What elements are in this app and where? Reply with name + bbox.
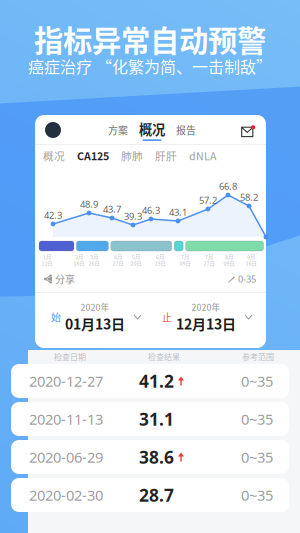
staticText: 48.9 xyxy=(80,198,98,210)
staticText: 检查日期 xyxy=(54,351,86,362)
staticText: 39.3 xyxy=(124,210,142,222)
staticText: 2020-02-30 xyxy=(29,485,103,505)
staticText: 46.3 xyxy=(142,204,160,216)
staticText: 58.2 xyxy=(240,191,258,203)
staticText: 止 xyxy=(162,310,172,324)
staticText: 5月 xyxy=(132,253,140,261)
staticText: 01月13日 xyxy=(65,313,125,333)
staticText: 分享 xyxy=(55,272,75,286)
button[interactable]: 概况 xyxy=(37,146,71,165)
staticText: 2020年 xyxy=(80,301,109,313)
button[interactable]: 2020-06-29 xyxy=(11,440,289,474)
staticText: 27日 xyxy=(203,259,214,267)
staticText: 8月 xyxy=(225,253,233,261)
button[interactable]: CA125 xyxy=(71,146,115,165)
staticText: 09日 xyxy=(179,259,190,267)
staticText: 66.8 xyxy=(219,180,237,192)
staticText: 概况 xyxy=(139,119,165,138)
button[interactable]: 2020-11-13 xyxy=(11,402,289,436)
staticText: 3月 xyxy=(75,253,83,261)
staticText: 27日 xyxy=(112,259,123,267)
staticText: 41.2 xyxy=(139,369,174,392)
staticText: 12日 xyxy=(41,259,52,267)
staticText: 癌症治疗 “化繁为简、一击制敌” xyxy=(28,54,272,78)
staticText: 0-35 xyxy=(238,273,256,285)
staticText: 18日 xyxy=(73,259,84,267)
staticText: 43.7 xyxy=(103,203,121,215)
staticText: 43.1 xyxy=(169,206,187,218)
staticText: 12月13日 xyxy=(176,313,236,333)
staticText: 2020年 xyxy=(191,301,220,313)
button[interactable]: 2020-02-30 xyxy=(11,478,289,512)
button[interactable]: 报告 xyxy=(171,119,201,141)
staticText: 始 xyxy=(51,310,61,324)
staticText: 0~35 xyxy=(241,409,273,429)
staticText: 31.1 xyxy=(139,407,174,430)
staticText: 13日 xyxy=(154,259,165,267)
staticText: 9月 xyxy=(247,253,255,261)
button[interactable]: Messages xyxy=(241,123,256,137)
staticText: 6月 xyxy=(156,253,164,261)
staticText: 方案 xyxy=(108,123,128,137)
staticText: 2020-11-13 xyxy=(29,409,103,429)
button[interactable]: 肝肝 xyxy=(149,146,183,165)
staticText: 7月 xyxy=(205,253,213,261)
staticText: 指标异常自动预警 xyxy=(34,18,266,60)
staticText: 4月 xyxy=(114,253,122,261)
staticText: 09日 xyxy=(223,259,234,267)
staticText: 2020-06-29 xyxy=(29,447,103,467)
staticText: 16日 xyxy=(245,259,256,267)
staticText: 3月 xyxy=(90,253,98,261)
staticText: 0~35 xyxy=(241,447,273,467)
staticText: 1月 xyxy=(43,253,51,261)
staticText: 肺肺 xyxy=(121,148,143,163)
staticText: 参考范围 xyxy=(242,351,274,362)
staticText: 肝肝 xyxy=(155,148,177,163)
staticText: 报告 xyxy=(176,123,196,137)
staticText: 57.2 xyxy=(199,194,217,206)
staticText: 26日 xyxy=(88,259,99,267)
staticText: 7月 xyxy=(181,253,189,261)
staticText: 检查结果 xyxy=(148,351,180,362)
staticText: 28.7 xyxy=(139,483,174,506)
button[interactable]: 肺肺 xyxy=(115,146,149,165)
button[interactable]: 止 xyxy=(162,297,252,337)
button[interactable]: 2020-12-27 xyxy=(11,364,289,398)
staticText: CA125 xyxy=(77,148,109,163)
staticText: 0~35 xyxy=(241,485,273,505)
staticText: 38.6 xyxy=(139,445,174,468)
button[interactable]: 始 xyxy=(51,297,141,337)
staticText: 概况 xyxy=(43,148,65,163)
staticText: 2020-12-27 xyxy=(29,371,103,391)
button[interactable]: dNLA xyxy=(183,146,222,165)
staticText: 42.3 xyxy=(44,209,62,221)
button[interactable]: 概况 xyxy=(133,119,171,141)
button[interactable]: 分享 xyxy=(44,269,75,289)
staticText: 20日 xyxy=(130,259,141,267)
staticText: dNLA xyxy=(189,148,216,163)
staticText: 0~35 xyxy=(241,371,273,391)
button[interactable]: 方案 xyxy=(103,119,133,141)
